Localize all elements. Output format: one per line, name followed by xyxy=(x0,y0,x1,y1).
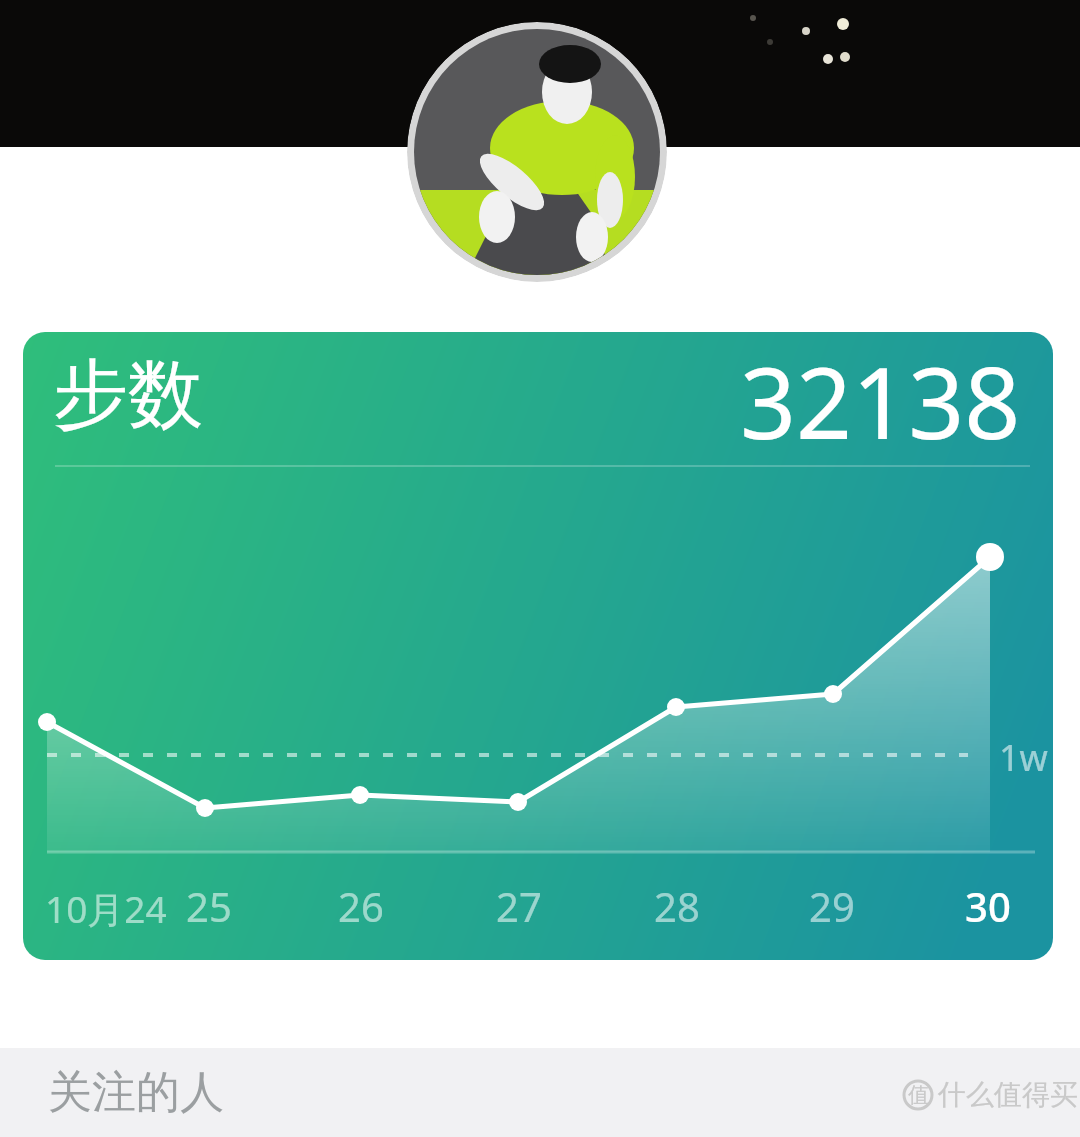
staticText: 28 xyxy=(654,879,700,933)
staticText: 1w xyxy=(999,733,1048,782)
staticText: 关注的人 xyxy=(48,1065,224,1120)
staticText: 什么值得买 xyxy=(938,1077,1078,1112)
staticText: 26 xyxy=(338,879,384,933)
staticText: 32138 xyxy=(740,334,1021,467)
staticText: 10月24 xyxy=(45,883,167,934)
button[interactable] xyxy=(407,22,667,282)
staticText: 步数 xyxy=(53,348,203,442)
button[interactable]: 关注的人 xyxy=(0,1048,1080,1137)
staticText: 25 xyxy=(186,879,232,933)
staticText: 30 xyxy=(965,879,1011,933)
button[interactable]: 步数 xyxy=(23,332,1053,960)
staticText: 29 xyxy=(809,879,855,933)
staticText: 27 xyxy=(496,879,542,933)
staticText: 值 xyxy=(908,1082,929,1108)
